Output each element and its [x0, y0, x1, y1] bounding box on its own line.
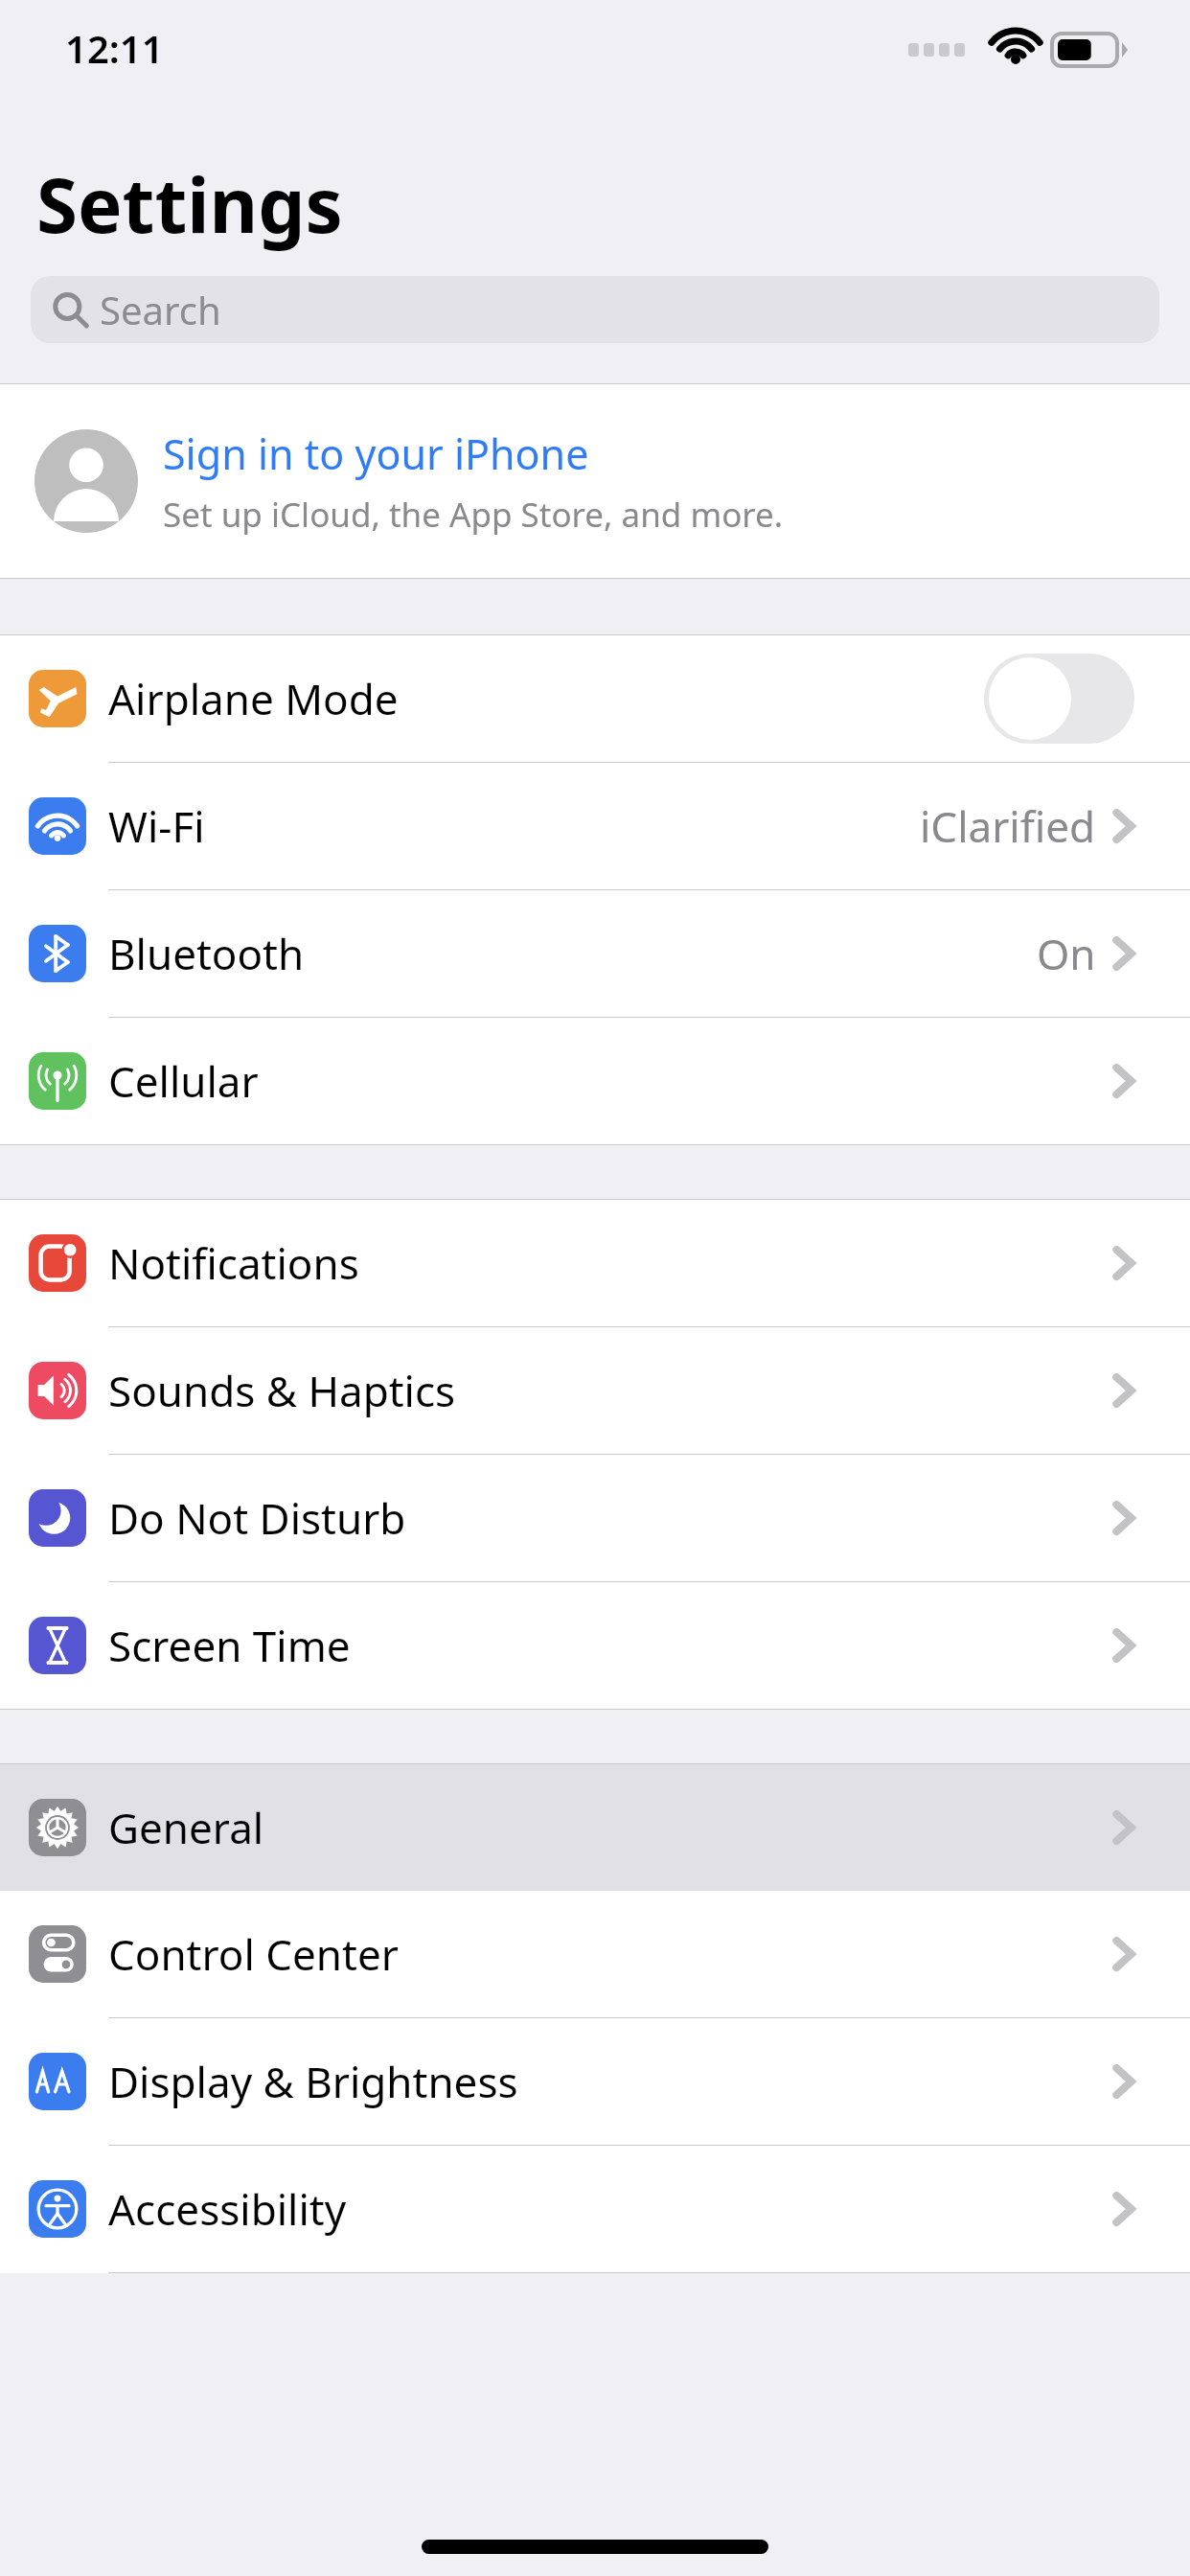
staticText: On: [1037, 925, 1096, 982]
staticText: Cellular: [108, 1052, 259, 1110]
staticText: Display & Brightness: [108, 2053, 518, 2110]
staticText: Accessibility: [108, 2180, 347, 2238]
staticText: Search: [100, 284, 221, 335]
staticText: Control Center: [108, 1925, 399, 1983]
button[interactable]: Do Not Disturb: [0, 1455, 1190, 1581]
button[interactable]: Accessibility: [0, 2146, 1190, 2272]
staticText: Airplane Mode: [108, 670, 399, 727]
staticText: Do Not Disturb: [108, 1489, 406, 1547]
staticText: Sounds & Haptics: [108, 1362, 456, 1419]
button[interactable]: General: [0, 1764, 1190, 1891]
button[interactable]: Sign in to your iPhone: [0, 384, 1190, 578]
staticText: Bluetooth: [108, 925, 305, 982]
staticText: Sign in to your iPhone: [163, 425, 589, 482]
staticText: iClarified: [920, 797, 1096, 855]
button[interactable]: Airplane Mode: [0, 635, 1190, 762]
button[interactable]: Bluetooth: [0, 890, 1190, 1017]
button[interactable]: Control Center: [0, 1891, 1190, 2017]
staticText: General: [108, 1799, 264, 1856]
button[interactable]: Cellular: [0, 1018, 1190, 1144]
staticText: Settings: [36, 153, 343, 255]
staticText: Notifications: [108, 1234, 359, 1292]
staticText: Screen Time: [108, 1617, 351, 1674]
button[interactable]: Search: [31, 276, 1159, 343]
staticText: 12:11: [65, 22, 164, 74]
button[interactable]: Display & Brightness: [0, 2018, 1190, 2145]
button[interactable]: Sounds & Haptics: [0, 1327, 1190, 1454]
button[interactable]: Screen Time: [0, 1582, 1190, 1709]
staticText: Set up iCloud, the App Store, and more.: [163, 492, 784, 538]
button[interactable]: Airplane Mode off: [984, 654, 1134, 744]
staticText: Wi-Fi: [108, 797, 205, 855]
button[interactable]: Wi-Fi: [0, 763, 1190, 889]
button[interactable]: Notifications: [0, 1200, 1190, 1326]
